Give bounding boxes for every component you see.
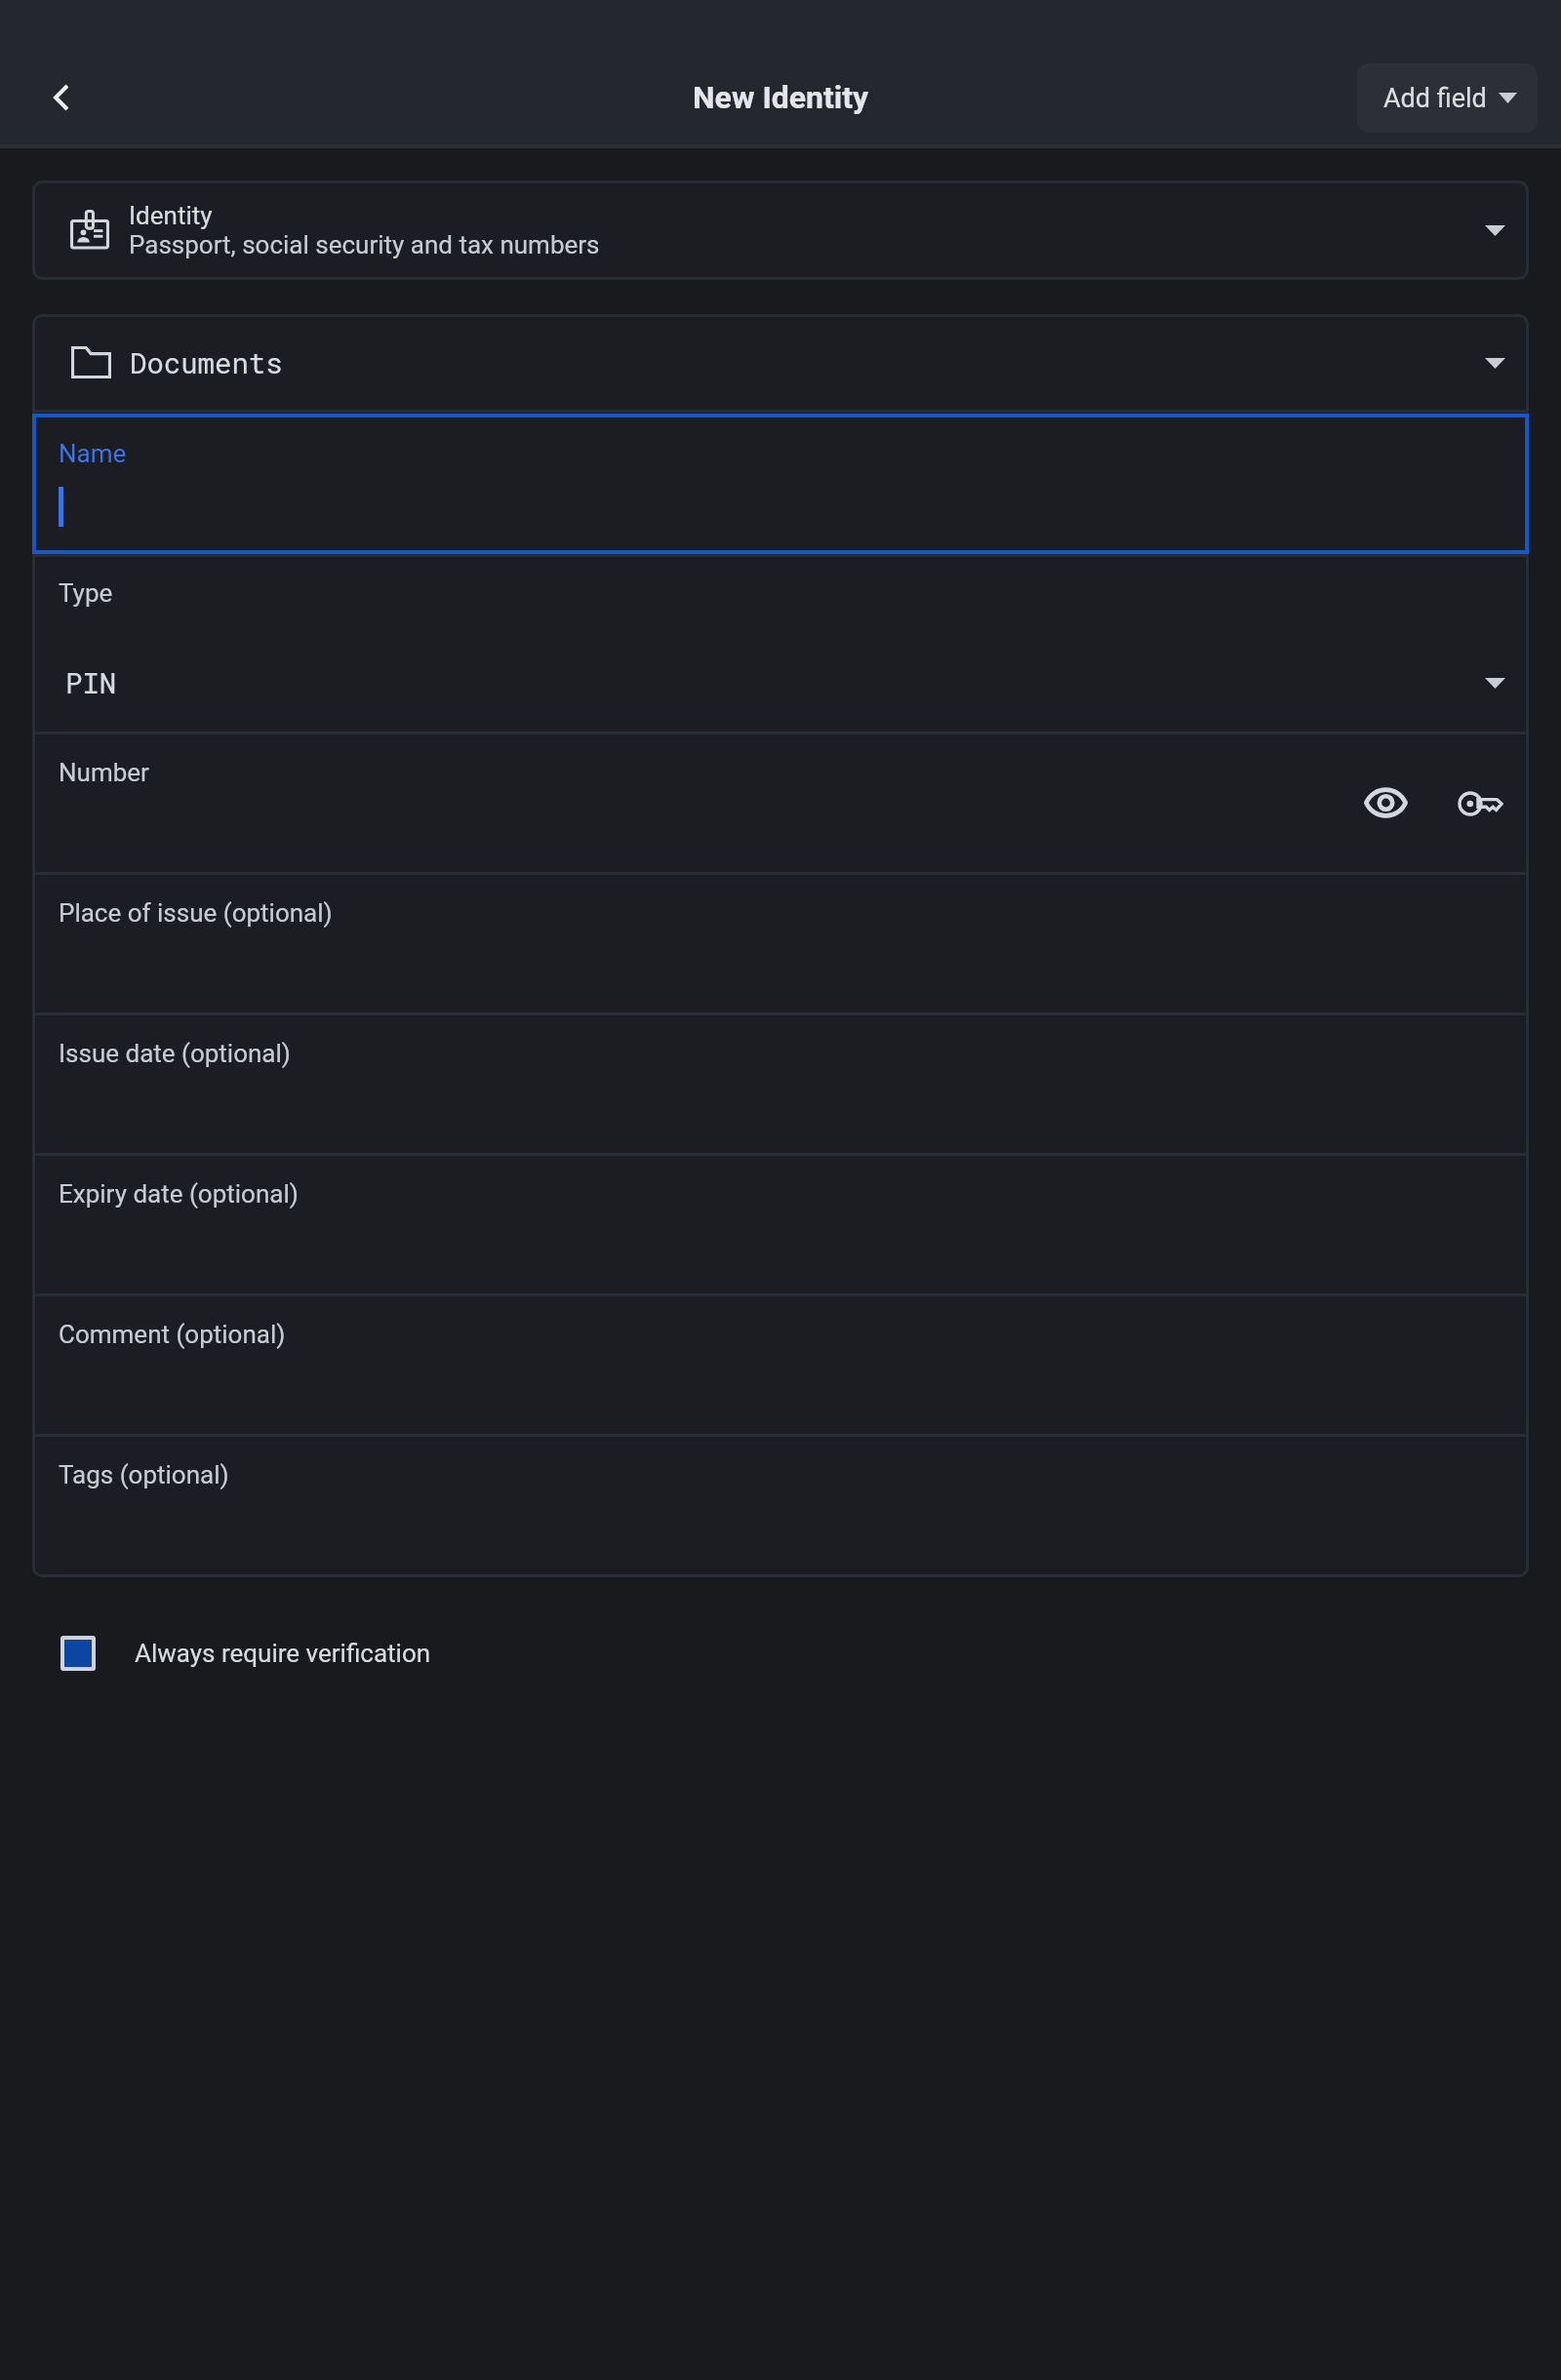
button[interactable]: Documents	[32, 314, 1529, 410]
staticText: PIN	[65, 664, 117, 701]
button[interactable]: Expiry date (optional)	[32, 1156, 1529, 1293]
staticText: Tags (optional)	[59, 1460, 229, 1489]
staticText: Type	[59, 578, 113, 608]
button[interactable]: Comment (optional)	[32, 1296, 1529, 1434]
button[interactable]: Show number	[1353, 771, 1418, 835]
staticText: Always require verification	[135, 1639, 431, 1668]
staticText: Identity	[129, 201, 213, 230]
button[interactable]: Tags (optional)	[32, 1437, 1529, 1577]
button[interactable]: Generate number	[1448, 772, 1512, 836]
staticText: Documents	[130, 344, 283, 381]
button[interactable]: Name	[32, 413, 1529, 554]
staticText: Name	[59, 439, 127, 468]
staticText: New Identity	[693, 79, 869, 116]
staticText: Comment (optional)	[59, 1320, 286, 1349]
staticText: Number	[59, 758, 149, 787]
staticText: Expiry date (optional)	[59, 1179, 299, 1209]
staticText: Add field	[1383, 83, 1487, 114]
button[interactable]: Always require verification	[0, 1614, 1561, 1692]
button[interactable]: Number	[32, 734, 1529, 872]
button[interactable]: Add field	[1357, 63, 1538, 133]
button[interactable]: Type	[32, 557, 1529, 732]
button[interactable]: Back	[19, 55, 104, 140]
staticText: Issue date (optional)	[59, 1039, 291, 1068]
button[interactable]: Place of issue (optional)	[32, 875, 1529, 1012]
button[interactable]: Identity	[32, 180, 1529, 280]
button[interactable]: Issue date (optional)	[32, 1015, 1529, 1153]
staticText: Passport, social security and tax number…	[129, 230, 600, 259]
staticText: Place of issue (optional)	[59, 898, 333, 928]
